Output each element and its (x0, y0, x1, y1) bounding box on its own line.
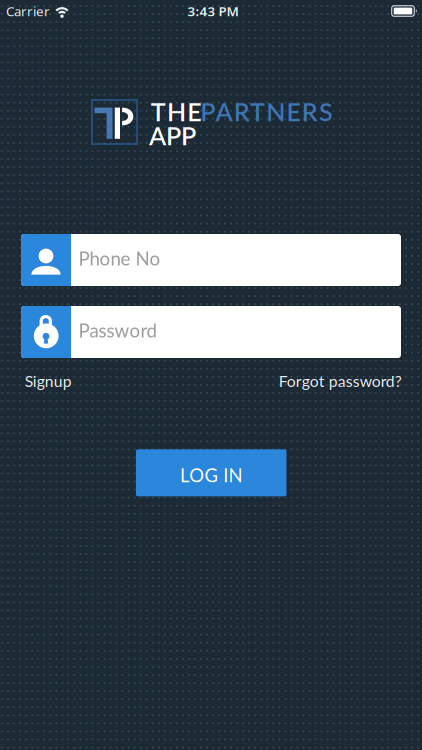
button[interactable]: Forgot password? (279, 371, 402, 390)
staticText: Carrier (6, 2, 50, 20)
button[interactable]: LOG IN (136, 449, 286, 496)
staticText: APP (149, 120, 196, 151)
staticText: THE (151, 96, 201, 127)
staticText: Signup (25, 371, 72, 390)
staticText: Password (78, 319, 156, 341)
button[interactable]: Signup (25, 371, 72, 390)
button[interactable]: Password (21, 306, 401, 358)
button[interactable]: Phone No (21, 234, 401, 286)
staticText: Phone No (78, 247, 160, 269)
staticText: PARTNERS (200, 96, 333, 127)
staticText: LOG IN (180, 464, 242, 486)
staticText: Forgot password? (279, 371, 402, 390)
staticText: 3:43 PM (187, 2, 238, 20)
